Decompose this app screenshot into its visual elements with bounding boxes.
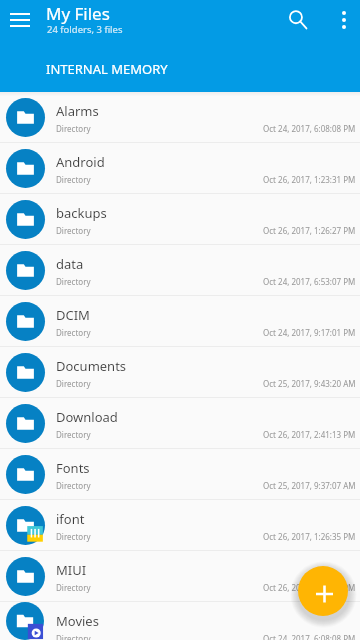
staticText: Oct 24, 2017, 6:08:08 PM (263, 633, 356, 640)
staticText: Movies (56, 612, 99, 630)
staticText: Oct 24, 2017, 6:08:08 PM (263, 123, 356, 134)
staticText: My Files (46, 2, 110, 25)
staticText: Directory (56, 123, 91, 134)
button[interactable]: Search (280, 2, 316, 38)
staticText: Oct 25, 2017, 9:43:20 AM (263, 378, 356, 389)
button[interactable]: Documents (0, 347, 360, 398)
button[interactable]: Open navigation menu (2, 2, 38, 38)
staticText: Directory (56, 582, 91, 593)
staticText: Directory (56, 276, 91, 287)
staticText: Oct 25, 2017, 9:37:07 AM (263, 480, 356, 491)
staticText: ifont (56, 510, 85, 528)
button[interactable]: Fonts (0, 449, 360, 500)
staticText: backups (56, 204, 107, 222)
button[interactable]: Android (0, 143, 360, 194)
staticText: 24 folders, 3 files (47, 23, 123, 36)
button[interactable]: ifont (0, 500, 360, 551)
button[interactable]: MIUI (0, 551, 360, 602)
staticText: Oct 26, 2017, 1:23:31 PM (263, 174, 356, 185)
staticText: Directory (56, 480, 91, 491)
staticText: Android (56, 153, 105, 171)
staticText: Directory (56, 327, 91, 338)
staticText: Oct 26, 2017, 1:26:27 PM (263, 225, 356, 236)
staticText: Directory (56, 531, 91, 542)
staticText: Directory (56, 633, 91, 640)
staticText: Directory (56, 225, 91, 236)
button[interactable]: data (0, 245, 360, 296)
button[interactable]: backups (0, 194, 360, 245)
button[interactable]: More options (326, 2, 360, 38)
staticText: Documents (56, 357, 127, 375)
staticText: MIUI (56, 561, 87, 579)
staticText: INTERNAL MEMORY (46, 60, 168, 78)
staticText: Directory (56, 378, 91, 389)
staticText: Alarms (56, 102, 99, 120)
staticText: data (56, 255, 84, 273)
button[interactable]: Add (298, 566, 348, 616)
button[interactable]: Download (0, 398, 360, 449)
staticText: Directory (56, 429, 91, 440)
staticText: Download (56, 408, 118, 426)
button[interactable]: Alarms (0, 92, 360, 143)
staticText: Oct 26, 2017, 2:41:13 PM (263, 429, 356, 440)
staticText: DCIM (56, 306, 90, 324)
button[interactable]: DCIM (0, 296, 360, 347)
staticText: Oct 26, 2017, 1:26:35 PM (263, 531, 356, 542)
staticText: Fonts (56, 459, 90, 477)
staticText: Oct 24, 2017, 6:53:07 PM (263, 276, 356, 287)
staticText: Oct 24, 2017, 9:17:01 PM (263, 327, 356, 338)
button[interactable]: Movies (0, 602, 360, 640)
staticText: Directory (56, 174, 91, 185)
staticText: Oct 26, 2017, 1:26:35 PM (263, 582, 356, 593)
